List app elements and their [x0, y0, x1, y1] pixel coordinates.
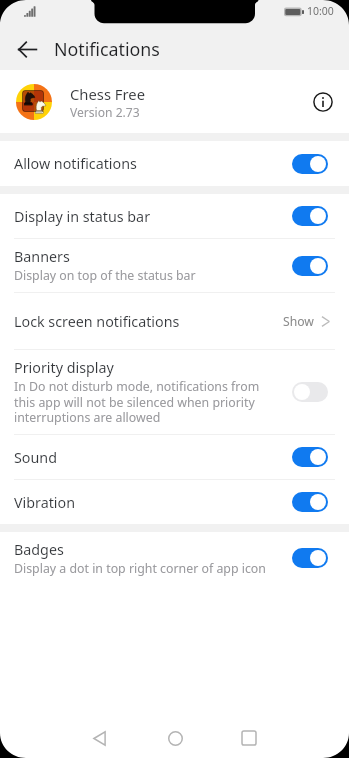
staticText: Badges [14, 540, 64, 559]
button[interactable]: Sound [0, 435, 349, 479]
staticText: Display a dot in top right corner of app… [14, 560, 266, 577]
staticText: Vibration [14, 493, 76, 512]
staticText: Allow notifications [14, 154, 137, 173]
button[interactable]: Vibration [0, 480, 349, 524]
button[interactable]: Priority display [0, 350, 349, 434]
staticText: Sound [14, 448, 57, 467]
button[interactable]: Display in status bar [0, 194, 349, 238]
staticText: Chess Free [70, 84, 146, 104]
staticText: 10:00 [307, 4, 334, 18]
staticText: In Do not disturb mode, notifications fr… [14, 378, 280, 426]
staticText: Lock screen notifications [14, 312, 180, 331]
button[interactable]: Allow notifications [0, 141, 349, 186]
staticText: Version 2.73 [70, 104, 140, 120]
button[interactable]: Back [75, 714, 123, 758]
button[interactable]: On [292, 206, 328, 226]
staticText: Display on top of the status bar [14, 267, 196, 284]
button[interactable]: Badges [0, 532, 349, 584]
button[interactable]: Lock screen notifications [0, 293, 349, 349]
button[interactable]: Banners [0, 239, 349, 292]
button[interactable]: On [292, 256, 328, 276]
button[interactable]: On [292, 447, 328, 467]
button[interactable]: On [292, 154, 328, 174]
staticText: Show [283, 313, 314, 330]
staticText: Priority display [14, 358, 114, 377]
button[interactable]: Back [9, 31, 45, 67]
button[interactable]: On [292, 548, 328, 568]
button[interactable]: Off [292, 382, 328, 402]
button[interactable]: Home [151, 714, 199, 758]
button[interactable]: On [292, 492, 328, 512]
staticText: Banners [14, 247, 70, 266]
button[interactable]: App info [310, 89, 336, 115]
button[interactable]: Chess Free [0, 70, 349, 133]
staticText: Notifications [54, 37, 160, 61]
button[interactable]: Recents [225, 714, 273, 758]
staticText: Display in status bar [14, 207, 151, 226]
